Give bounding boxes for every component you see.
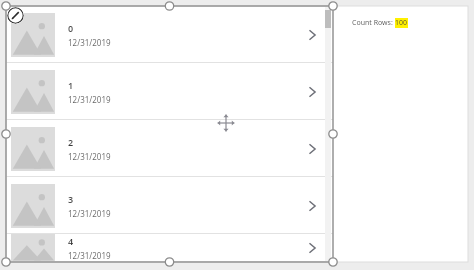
button[interactable]: Open item 0 (305, 28, 319, 42)
button[interactable]: Open item 3 (305, 199, 319, 213)
staticText: 4 (68, 235, 74, 247)
button[interactable]: 0 (6, 6, 333, 262)
button[interactable]: Open item 2 (305, 142, 319, 156)
button[interactable]: Count Rows: (352, 18, 408, 28)
staticText: 100 (395, 18, 408, 28)
button[interactable]: 1 (6, 63, 333, 120)
button[interactable]: 0 (6, 6, 333, 63)
staticText: 12/31/2019 (68, 37, 111, 48)
staticText: 0 (68, 22, 74, 34)
staticText: 2 (68, 136, 74, 148)
staticText: 1 (68, 79, 74, 91)
staticText: 12/31/2019 (68, 151, 111, 162)
staticText: 3 (68, 193, 74, 205)
button[interactable]: 3 (6, 177, 333, 234)
staticText: 12/31/2019 (68, 208, 111, 219)
staticText: 12/31/2019 (68, 94, 111, 105)
button[interactable]: 2 (6, 120, 333, 177)
button[interactable]: Open item 4 (305, 241, 319, 255)
button[interactable]: Edit gallery (7, 7, 24, 24)
staticText: 12/31/2019 (68, 250, 111, 261)
staticText: Count Rows: (352, 18, 395, 28)
button[interactable]: Open item 1 (305, 85, 319, 99)
button[interactable]: 4 (6, 234, 333, 262)
